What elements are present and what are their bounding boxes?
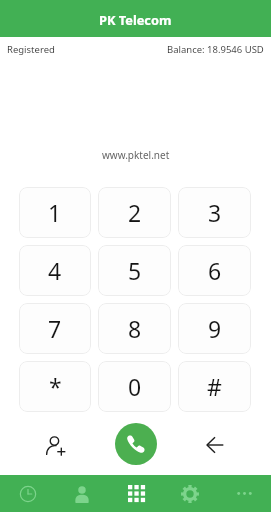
button[interactable]: 6 bbox=[178, 245, 251, 296]
button[interactable]: 9 bbox=[178, 303, 251, 354]
staticText: 7 bbox=[48, 313, 62, 344]
staticText: 5 bbox=[128, 255, 142, 286]
staticText: 1 bbox=[48, 197, 62, 228]
staticText: 3 bbox=[208, 197, 222, 228]
staticText: 8 bbox=[128, 313, 142, 344]
button[interactable]: 2 bbox=[98, 187, 171, 238]
button[interactable]: Add contact bbox=[19, 420, 96, 468]
staticText: 9 bbox=[208, 313, 222, 344]
button[interactable]: Call bbox=[115, 423, 157, 465]
button[interactable]: Dialpad bbox=[109, 475, 163, 512]
button[interactable]: 5 bbox=[98, 245, 171, 296]
button[interactable]: 3 bbox=[178, 187, 251, 238]
staticText: Registered bbox=[7, 43, 55, 56]
button[interactable]: 4 bbox=[19, 245, 91, 296]
staticText: # bbox=[207, 371, 222, 402]
staticText: 2 bbox=[128, 197, 142, 228]
staticText: 0 bbox=[128, 371, 142, 402]
button[interactable]: Recents bbox=[0, 475, 55, 512]
button[interactable]: # bbox=[178, 361, 251, 412]
staticText: PK Telecom bbox=[99, 11, 172, 28]
button[interactable]: 1 bbox=[19, 187, 91, 238]
button[interactable]: 0 bbox=[98, 361, 171, 412]
button[interactable]: Backspace bbox=[174, 420, 252, 468]
button[interactable]: Contacts bbox=[55, 475, 109, 512]
button[interactable]: Settings bbox=[163, 475, 217, 512]
staticText: * bbox=[49, 371, 62, 402]
staticText: Balance: 18.9546 USD bbox=[167, 43, 264, 56]
button[interactable]: More bbox=[217, 475, 271, 512]
staticText: www.pktel.net bbox=[102, 148, 170, 162]
button[interactable]: 8 bbox=[98, 303, 171, 354]
button[interactable]: * bbox=[19, 361, 91, 412]
staticText: 4 bbox=[48, 255, 62, 286]
button[interactable]: 7 bbox=[19, 303, 91, 354]
staticText: 6 bbox=[208, 255, 222, 286]
